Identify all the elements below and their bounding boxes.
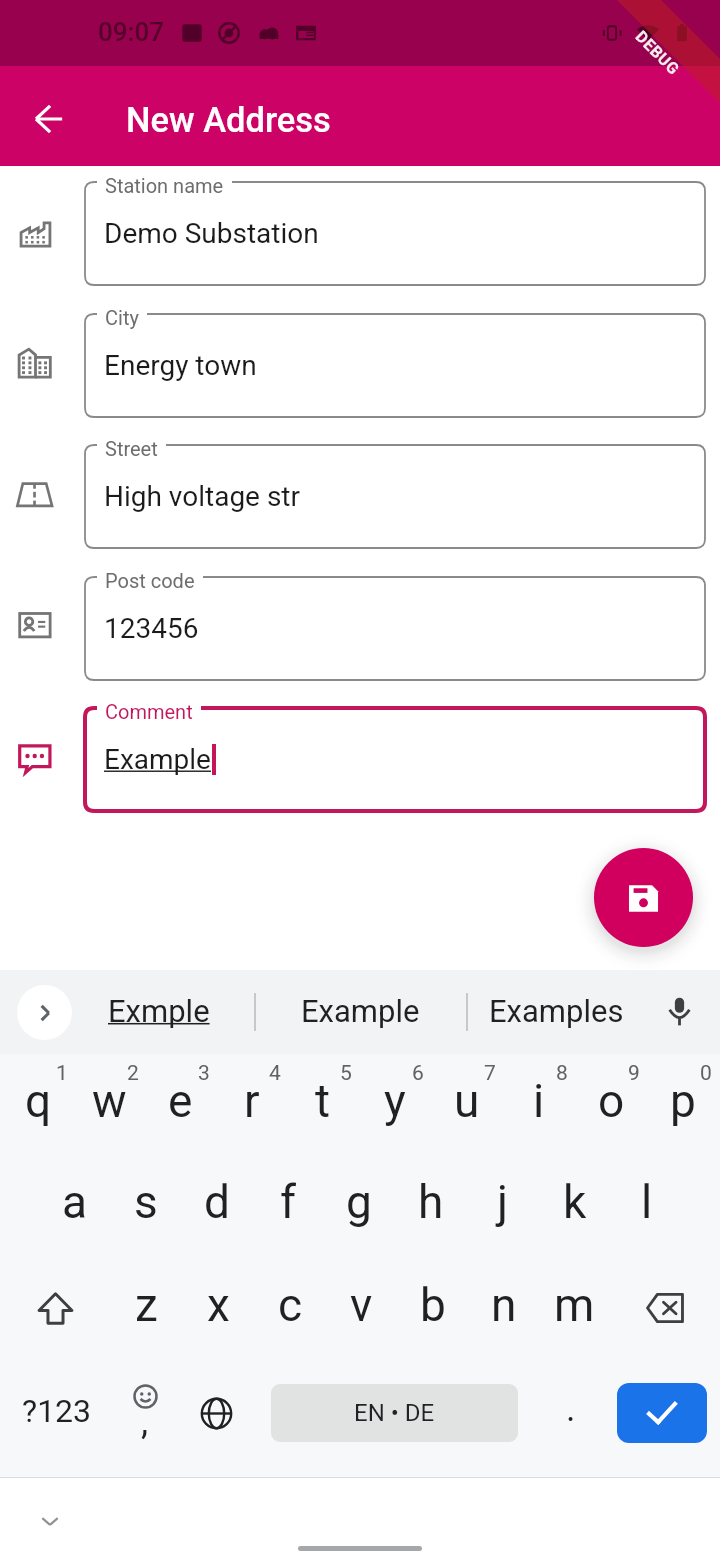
staticText: Example [301, 993, 420, 1029]
button[interactable]: g [322, 1155, 394, 1257]
staticText: e [168, 1074, 193, 1128]
staticText: EN • DE [354, 1399, 435, 1427]
button[interactable]: j [466, 1155, 538, 1257]
staticText: 1 [56, 1061, 68, 1086]
staticText: c [278, 1278, 303, 1332]
staticText: ?123 [22, 1392, 92, 1430]
staticText: 0 [700, 1061, 712, 1086]
button[interactable]: Change language [176, 1359, 256, 1477]
staticText: j [497, 1175, 509, 1229]
staticText: Example [104, 743, 211, 776]
button[interactable]: Street [85, 445, 705, 548]
staticText: a [62, 1175, 88, 1229]
staticText: 09:07 [98, 17, 164, 47]
staticText: n [491, 1278, 517, 1332]
staticText: 2 [127, 1061, 139, 1086]
button[interactable]: v [326, 1257, 397, 1359]
button[interactable]: Post code [85, 577, 705, 680]
button[interactable]: h [394, 1155, 466, 1257]
staticText: Exmple [108, 993, 210, 1029]
staticText: l [641, 1175, 653, 1229]
button[interactable]: Enter [617, 1383, 707, 1443]
button[interactable]: s [109, 1155, 180, 1257]
staticText: Post code [105, 569, 195, 592]
button[interactable]: Examples [471, 970, 642, 1054]
staticText: 7 [484, 1061, 496, 1086]
staticText: Street [105, 437, 158, 460]
staticText: r [244, 1074, 260, 1128]
button[interactable]: Example [283, 970, 438, 1054]
staticText: s [134, 1175, 158, 1229]
staticText: h [418, 1175, 444, 1229]
button[interactable]: d [180, 1155, 251, 1257]
button[interactable]: t [286, 1054, 358, 1155]
button[interactable]: k [538, 1155, 610, 1257]
button[interactable]: l [610, 1155, 682, 1257]
staticText: DEBUG [632, 27, 684, 79]
button[interactable]: w [73, 1054, 144, 1155]
staticText: New Address [126, 100, 331, 140]
staticText: z [135, 1278, 158, 1332]
staticText: b [420, 1278, 446, 1332]
button[interactable]: City [85, 314, 705, 417]
button[interactable]: f [251, 1155, 322, 1257]
staticText: v [350, 1278, 373, 1332]
staticText: q [25, 1074, 52, 1128]
button[interactable]: Voice input [650, 982, 708, 1040]
button[interactable]: z [110, 1257, 182, 1359]
staticText: x [207, 1278, 230, 1332]
button[interactable]: c [254, 1257, 326, 1359]
staticText: o [598, 1074, 625, 1128]
button[interactable]: n [468, 1257, 539, 1359]
staticText: f [280, 1175, 296, 1229]
staticText: Station name [105, 174, 224, 197]
button[interactable]: y [358, 1054, 430, 1155]
staticText: Examples [489, 993, 624, 1029]
button[interactable]: Backspace [610, 1257, 720, 1359]
button[interactable]: b [397, 1257, 468, 1359]
staticText: k [563, 1175, 587, 1229]
button[interactable]: a [38, 1155, 109, 1257]
staticText: City [105, 306, 139, 329]
staticText: 4 [269, 1061, 281, 1086]
staticText: 8 [556, 1061, 568, 1086]
staticText: y [384, 1074, 406, 1128]
button[interactable]: m [539, 1257, 610, 1359]
staticText: 9 [628, 1061, 640, 1086]
button[interactable]: More suggestions [17, 985, 72, 1040]
button[interactable]: Save [594, 848, 693, 947]
staticText: High voltage str [104, 480, 301, 513]
staticText: 3 [198, 1061, 210, 1086]
staticText: , [141, 1401, 149, 1443]
button[interactable]: x [182, 1257, 254, 1359]
button[interactable]: Station name [85, 182, 705, 285]
staticText: 123456 [104, 612, 199, 645]
button[interactable]: Comment [85, 708, 705, 811]
button[interactable]: e [144, 1054, 215, 1155]
button[interactable]: ?123 [0, 1359, 114, 1477]
button[interactable]: Hide keyboard [24, 1495, 76, 1547]
button[interactable]: EN • DE [271, 1384, 518, 1442]
staticText: m [554, 1278, 595, 1332]
staticText: g [346, 1175, 372, 1229]
staticText: 5 [340, 1061, 352, 1086]
staticText: w [92, 1074, 127, 1128]
button[interactable]: Exmple [90, 970, 228, 1054]
button[interactable]: o [574, 1054, 646, 1155]
staticText: u [454, 1074, 480, 1128]
button[interactable]: Back [19, 89, 79, 149]
staticText: Comment [105, 700, 193, 723]
button[interactable]: . [530, 1359, 612, 1477]
button[interactable]: i [502, 1054, 574, 1155]
button[interactable]: Shift [0, 1257, 110, 1359]
staticText: t [315, 1074, 331, 1128]
button[interactable]: Emoji [114, 1359, 176, 1477]
button[interactable]: q [2, 1054, 73, 1155]
staticText: 6 [412, 1061, 424, 1086]
button[interactable]: r [215, 1054, 286, 1155]
button[interactable]: u [430, 1054, 502, 1155]
staticText: p [670, 1074, 696, 1128]
staticText: i [533, 1074, 545, 1128]
button[interactable]: p [646, 1054, 718, 1155]
staticText: . [566, 1388, 576, 1430]
